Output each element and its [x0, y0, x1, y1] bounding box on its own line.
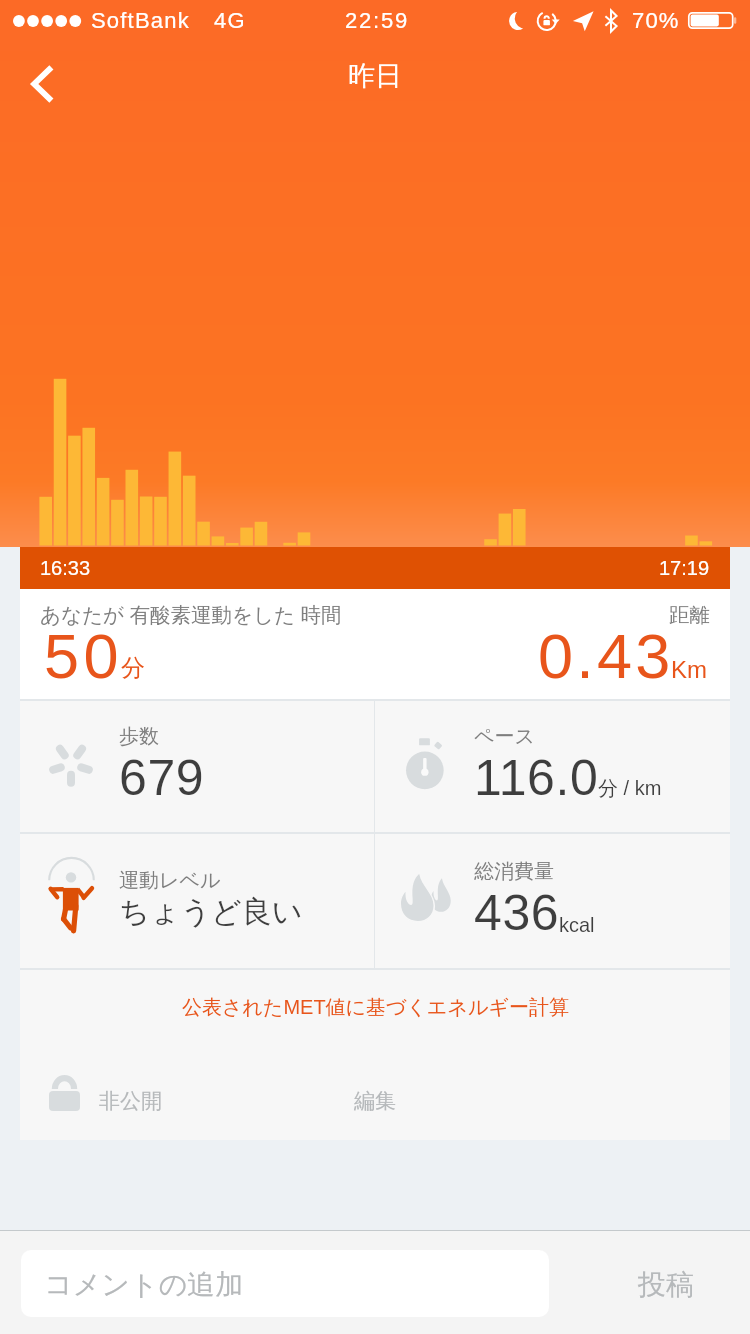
staticText: SoftBank: [91, 8, 190, 33]
staticText: 70%: [632, 8, 680, 33]
staticText: 4G: [214, 8, 246, 33]
button[interactable]: 公表されたMET値に基づくエネルギー計算: [174, 989, 577, 1026]
staticText: ペース: [474, 724, 535, 749]
staticText: 679: [119, 750, 205, 806]
button[interactable]: 総消費量: [375, 834, 730, 968]
staticText: 50: [44, 621, 124, 691]
staticText: 非公開: [99, 1088, 162, 1114]
staticText: 投稿: [638, 1267, 694, 1302]
staticText: 総消費量: [474, 859, 554, 884]
button[interactable]: 編集: [348, 1080, 402, 1122]
staticText: あなたが 有酸素運動をした 時間: [40, 602, 342, 628]
staticText: 0.43: [538, 621, 674, 691]
staticText: 116.0: [474, 750, 599, 806]
staticText: Km: [671, 656, 707, 683]
staticText: 運動レベル: [119, 868, 221, 893]
staticText: kcal: [559, 914, 595, 936]
staticText: 436: [474, 885, 560, 941]
staticText: 分 / km: [598, 776, 662, 801]
button[interactable]: Back: [12, 54, 72, 114]
staticText: ちょうど良い: [119, 893, 303, 931]
button[interactable]: 投稿: [632, 1257, 700, 1312]
button[interactable]: 運動レベル: [20, 834, 374, 968]
staticText: 22:59: [345, 8, 410, 33]
staticText: 歩数: [119, 724, 159, 749]
button[interactable]: 歩数: [20, 701, 374, 832]
staticText: 編集: [354, 1088, 396, 1114]
button[interactable]: ペース: [375, 701, 730, 832]
staticText: コメントの追加: [44, 1267, 244, 1302]
staticText: 17:19: [659, 557, 710, 579]
staticText: 分: [121, 653, 145, 683]
button[interactable]: 非公開: [45, 1072, 166, 1115]
button[interactable]: コメントの追加: [21, 1250, 549, 1317]
staticText: 昨日: [348, 59, 402, 93]
staticText: 16:33: [40, 557, 91, 579]
staticText: 公表されたMET値に基づくエネルギー計算: [182, 995, 569, 1020]
staticText: 距離: [669, 602, 710, 628]
